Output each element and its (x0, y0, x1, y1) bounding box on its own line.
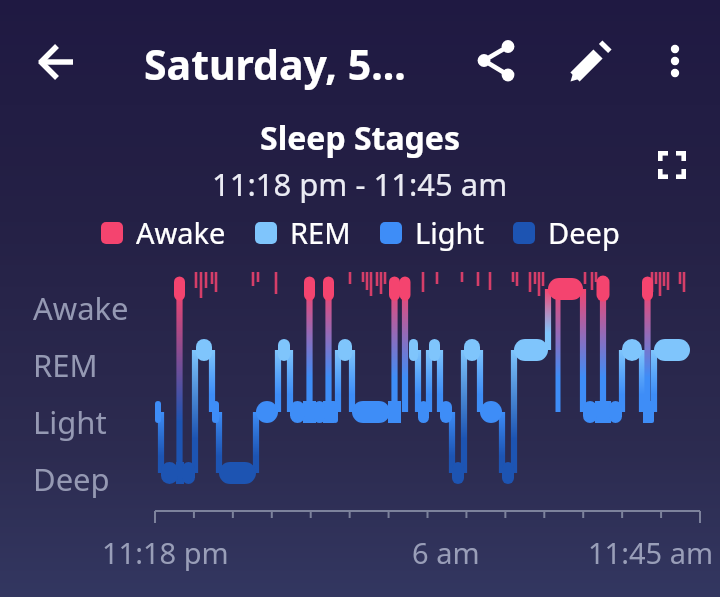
staticText: 6 am (412, 533, 480, 572)
staticText: Deep (548, 213, 620, 252)
button[interactable] (32, 38, 80, 86)
staticText: Light (33, 401, 107, 443)
staticText: Awake (136, 213, 226, 252)
staticText: Sleep Stages (260, 116, 461, 160)
staticText: Deep (33, 458, 110, 500)
staticText: 11:45 am (588, 533, 714, 572)
staticText: REM (33, 344, 98, 386)
staticText: Saturday, 5... (144, 36, 406, 92)
button[interactable] (650, 143, 694, 187)
button[interactable] (653, 37, 697, 81)
staticText: Awake (33, 287, 129, 329)
button[interactable] (470, 35, 522, 87)
button[interactable] (567, 37, 615, 85)
staticText: Light (415, 213, 484, 252)
staticText: REM (290, 213, 351, 252)
staticText: 11:18 pm (102, 533, 229, 572)
staticText: 11:18 pm - 11:45 am (212, 163, 508, 205)
